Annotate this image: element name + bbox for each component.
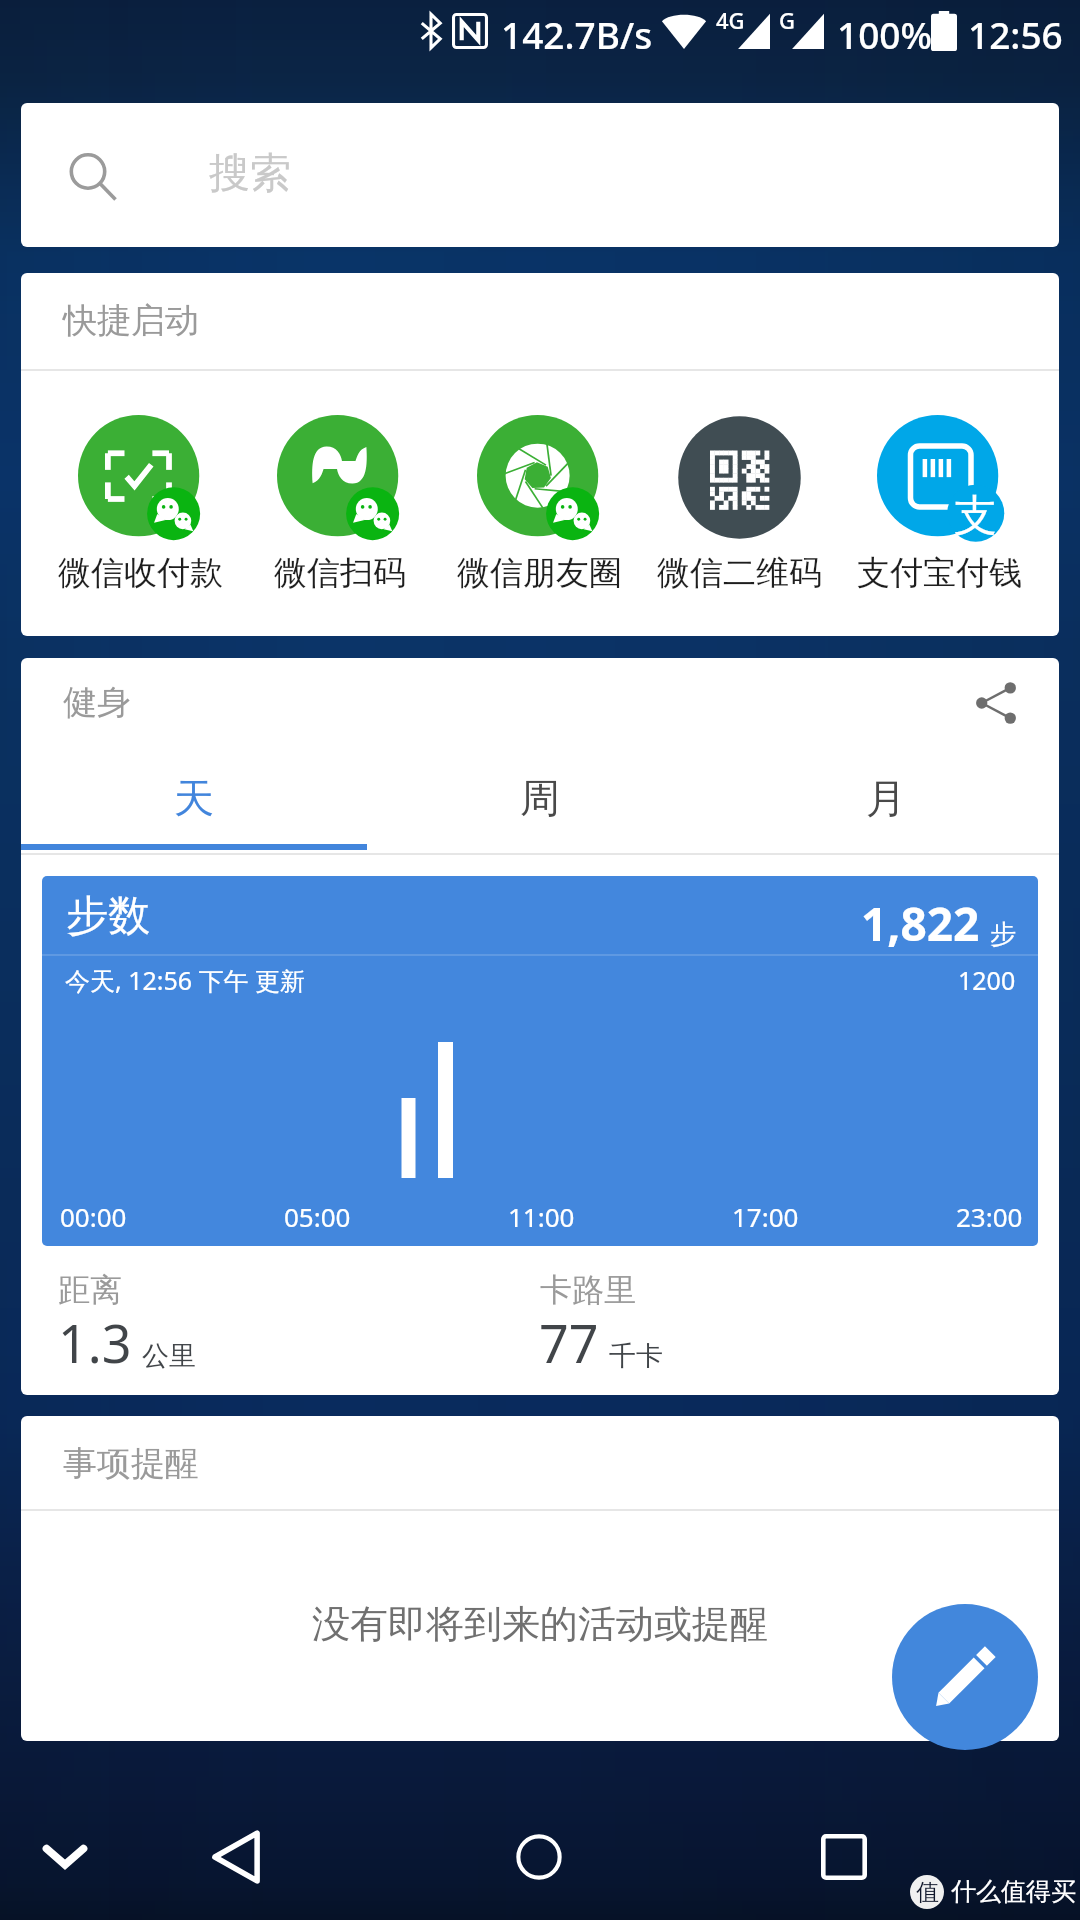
staticText: 天 [174, 773, 214, 823]
button[interactable]: 微信朋友圈 [439, 371, 639, 636]
staticText: 值 [916, 1878, 939, 1907]
button[interactable]: Hide [20, 1812, 110, 1902]
staticText: 快捷启动 [63, 299, 199, 342]
staticText: 健身 [63, 681, 131, 724]
button[interactable]: 步数 [42, 876, 1038, 1246]
button[interactable]: 微信扫码 [240, 371, 439, 636]
button[interactable]: 天 [21, 758, 367, 850]
staticText: 支付宝付钱 [857, 552, 1022, 594]
button[interactable]: New reminder [892, 1604, 1038, 1750]
button[interactable]: 周 [367, 758, 713, 850]
staticText: 1.3 [58, 1307, 132, 1378]
staticText: G [779, 5, 795, 35]
button[interactable]: Share [956, 664, 1036, 744]
button[interactable]: 月 [713, 758, 1059, 850]
staticText: 77 [539, 1307, 599, 1378]
staticText: 没有即将到来的活动或提醒 [312, 1600, 768, 1648]
staticText: 月 [866, 773, 906, 823]
button[interactable]: 微信收付款 [41, 371, 240, 636]
button[interactable]: 支 [839, 371, 1039, 636]
staticText: 23:00 [956, 1199, 1023, 1234]
staticText: 4G [716, 5, 745, 35]
staticText: 距离 [58, 1270, 122, 1310]
staticText: 142.7B/s [501, 9, 653, 59]
staticText: 步数 [66, 890, 150, 943]
staticText: 今天, 12:56 下午 更新 [65, 963, 306, 997]
staticText: 什么值得买 [951, 1876, 1076, 1907]
staticText: 周 [520, 773, 560, 823]
staticText: 17:00 [732, 1199, 799, 1234]
staticText: 1,822 [861, 892, 980, 955]
staticText: 公里 [142, 1339, 196, 1373]
button[interactable]: 微信二维码 [639, 371, 839, 636]
staticText: 微信朋友圈 [457, 552, 622, 594]
staticText: 卡路里 [540, 1270, 636, 1310]
button[interactable]: Recents [799, 1812, 889, 1902]
staticText: 微信扫码 [274, 552, 406, 594]
staticText: 微信二维码 [657, 552, 822, 594]
button[interactable]: Back [191, 1812, 281, 1902]
staticText: 步 [990, 918, 1016, 951]
staticText: 05:00 [284, 1199, 351, 1234]
staticText: 00:00 [60, 1199, 127, 1234]
staticText: 11:00 [508, 1199, 575, 1234]
staticText: 微信收付款 [58, 552, 223, 594]
button[interactable]: Home [494, 1812, 584, 1902]
staticText: 100% [837, 9, 933, 59]
staticText: 事项提醒 [63, 1442, 199, 1485]
staticText: 1200 [958, 963, 1016, 997]
staticText: 支 [954, 489, 997, 543]
staticText: 千卡 [609, 1339, 663, 1373]
staticText: 12:56 [968, 9, 1063, 59]
staticText: 搜索 [209, 148, 291, 200]
